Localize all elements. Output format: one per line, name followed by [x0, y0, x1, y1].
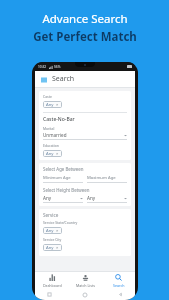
staticText: Unmarried — [43, 132, 67, 138]
button[interactable]: Search — [102, 272, 135, 289]
staticText: Select Age Between — [43, 166, 84, 172]
staticText: Any — [46, 228, 54, 234]
staticText: Any — [46, 102, 54, 108]
staticText: 10:32 — [38, 65, 47, 69]
button[interactable]: Dashboard — [35, 272, 69, 289]
button[interactable]: Home — [82, 292, 88, 298]
button[interactable]: Any — [43, 194, 83, 202]
staticText: Any — [46, 151, 54, 157]
button[interactable]: Any — [43, 244, 62, 251]
staticText: Search — [52, 74, 75, 84]
button[interactable]: Back — [118, 292, 123, 297]
staticText: Minimum Age — [43, 175, 71, 181]
staticText: Any — [46, 245, 54, 251]
button[interactable]: Unmarried — [43, 131, 127, 139]
staticText: Dashboard — [43, 283, 62, 288]
button[interactable]: Any — [87, 194, 127, 202]
staticText: Select Height Between — [43, 187, 90, 193]
staticText: Service — [43, 212, 59, 218]
staticText: 56% — [54, 65, 61, 69]
staticText: Maximum Age — [87, 175, 116, 181]
button[interactable]: Any — [43, 150, 62, 157]
staticText: Match Lists — [76, 283, 96, 288]
staticText: × — [56, 228, 59, 234]
staticText: Caste-No-Bar — [43, 116, 75, 123]
button[interactable]: Any — [43, 227, 62, 234]
staticText: Search — [113, 283, 125, 288]
button[interactable]: Minimum Age — [43, 174, 83, 183]
button[interactable]: Maximum Age — [87, 174, 127, 183]
staticText: × — [56, 151, 59, 157]
staticText: Advance Search — [42, 11, 128, 27]
staticText: Any — [43, 195, 52, 201]
button[interactable]: Recents — [47, 292, 52, 297]
staticText: Service State/Country — [43, 220, 78, 225]
staticText: Education — [43, 143, 59, 148]
staticText: Any — [87, 195, 96, 201]
button[interactable]: Open navigation menu — [40, 76, 47, 83]
button[interactable]: Any — [43, 101, 62, 108]
staticText: Caste — [43, 94, 52, 99]
button[interactable]: Match Lists — [69, 272, 102, 289]
staticText: Service City — [43, 237, 62, 242]
staticText: × — [56, 102, 59, 108]
staticText: × — [56, 245, 59, 251]
staticText: Marital — [43, 126, 55, 131]
staticText: Get Perfect Match — [33, 29, 137, 45]
